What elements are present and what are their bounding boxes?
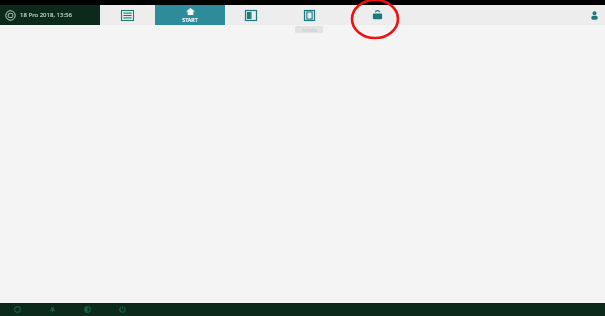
button[interactable]: START bbox=[155, 5, 225, 25]
button[interactable]: Power bbox=[113, 303, 131, 316]
button[interactable]: Briefcase bbox=[353, 5, 401, 25]
button[interactable]: Menu bbox=[100, 5, 155, 25]
staticText: 18 Pro 2018, 13:56 bbox=[20, 11, 72, 19]
staticText: START bbox=[182, 16, 198, 23]
button[interactable]: Documents bbox=[285, 5, 333, 25]
button[interactable]: Status bbox=[8, 303, 26, 316]
button[interactable]: Network bbox=[43, 303, 61, 316]
button[interactable]: Account bbox=[583, 5, 605, 25]
button[interactable]: 18 Pro 2018, 13:56 bbox=[0, 5, 100, 25]
staticText: Arbeits bbox=[302, 27, 317, 33]
button[interactable]: Library bbox=[227, 5, 275, 25]
button[interactable]: Display bbox=[78, 303, 96, 316]
